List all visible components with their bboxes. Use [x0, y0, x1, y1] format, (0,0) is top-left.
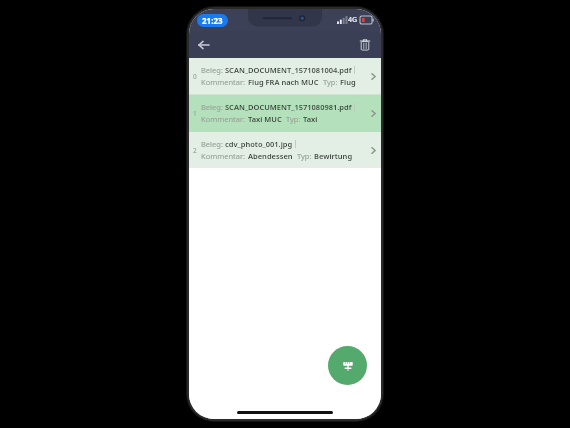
- staticText: SCAN_DOCUMENT_1571080981.pdf: [225, 102, 352, 112]
- button[interactable]: 2: [189, 132, 381, 168]
- staticText: 4G: [348, 15, 358, 25]
- button[interactable]: Scan document: [328, 346, 367, 385]
- staticText: 21:23: [202, 15, 223, 26]
- staticText: Abendessen: [248, 151, 293, 161]
- staticText: 2: [193, 146, 197, 155]
- button[interactable]: Delete: [354, 34, 376, 56]
- staticText: Bewirtung: [314, 151, 353, 161]
- button[interactable]: Back: [193, 34, 215, 56]
- staticText: Flug: [340, 77, 356, 87]
- staticText: 1: [193, 109, 197, 118]
- button[interactable]: 1: [189, 95, 381, 131]
- staticText: Taxi: [303, 114, 318, 124]
- staticText: Beleg:: [201, 139, 225, 149]
- staticText: SCAN_DOCUMENT_1571081004.pdf: [225, 65, 352, 75]
- staticText: Typ:: [297, 151, 314, 161]
- staticText: 0: [193, 72, 197, 81]
- staticText: Typ:: [286, 114, 303, 124]
- staticText: Kommentar:: [201, 151, 248, 161]
- staticText: Flug FRA nach MUC: [248, 77, 319, 87]
- staticText: Beleg:: [201, 102, 225, 112]
- staticText: Kommentar:: [201, 114, 248, 124]
- staticText: cdv_photo_001.jpg: [225, 139, 293, 149]
- staticText: Beleg:: [201, 65, 225, 75]
- staticText: Kommentar:: [201, 77, 248, 87]
- staticText: Typ:: [323, 77, 340, 87]
- staticText: Taxi MUC: [248, 114, 282, 124]
- button[interactable]: 0: [189, 58, 381, 94]
